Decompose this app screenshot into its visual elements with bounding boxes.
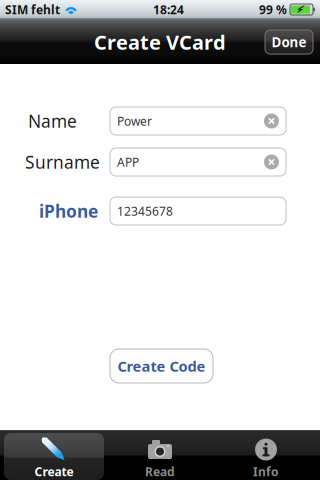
staticText: 12345678: [117, 203, 173, 219]
staticText: Name: [28, 109, 77, 132]
button[interactable]: Clear text: [264, 154, 279, 169]
button[interactable]: Read: [107, 430, 213, 480]
staticText: Create: [34, 463, 73, 479]
staticText: APP: [117, 154, 139, 170]
staticText: iPhone: [39, 199, 98, 222]
staticText: Info: [253, 463, 279, 479]
button[interactable]: Create: [1, 430, 107, 480]
button[interactable]: Create Code: [110, 349, 213, 383]
staticText: Create Code: [117, 356, 205, 376]
staticText: Power: [117, 113, 152, 129]
staticText: Surname: [25, 150, 100, 173]
button[interactable]: Info: [213, 430, 319, 480]
button[interactable]: Clear text: [264, 113, 279, 128]
staticText: SIM fehlt: [5, 1, 60, 17]
staticText: 18:24: [153, 1, 184, 17]
staticText: Create VCard: [94, 29, 226, 55]
staticText: Read: [145, 463, 175, 479]
button[interactable]: Done: [265, 30, 313, 54]
staticText: 99 %: [259, 1, 287, 17]
staticText: Done: [271, 33, 306, 51]
